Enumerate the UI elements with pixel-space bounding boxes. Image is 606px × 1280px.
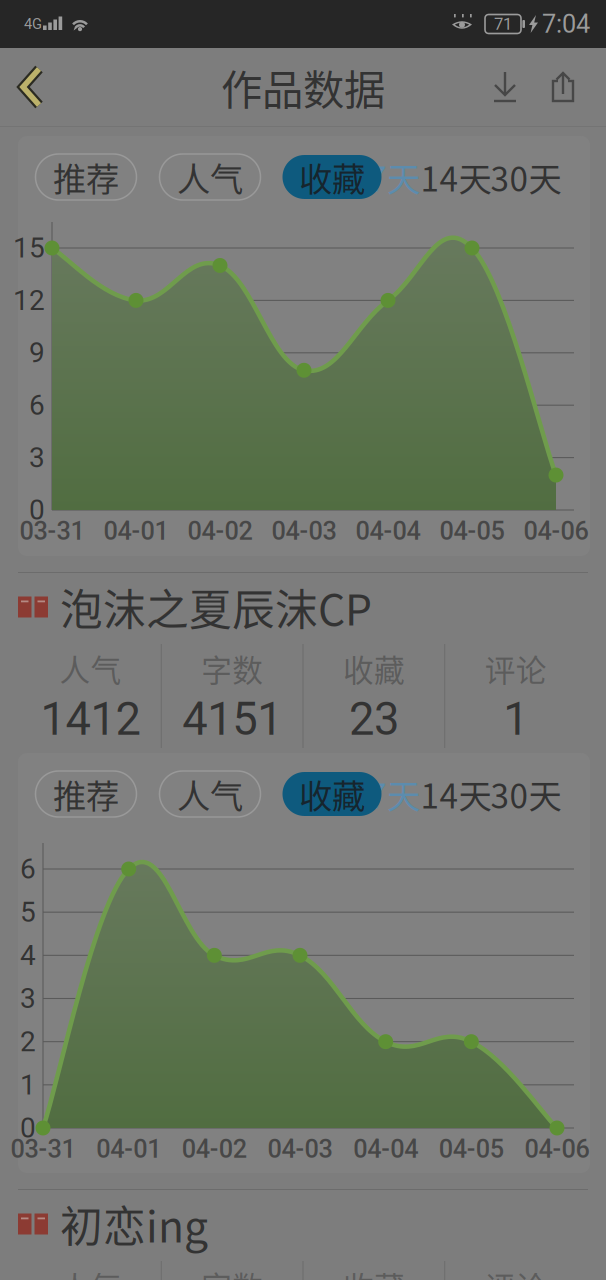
staticText: 9	[29, 336, 45, 369]
staticText: 3	[20, 982, 36, 1015]
staticText: 6	[20, 853, 36, 885]
staticText: 收藏	[343, 646, 405, 691]
staticText: 人气	[177, 153, 243, 201]
button[interactable]: 人气	[159, 771, 260, 817]
staticText: 03-31	[10, 1134, 75, 1164]
staticText: 04-03	[271, 516, 336, 546]
staticText: 评论	[485, 1263, 547, 1280]
button[interactable]: Download	[476, 48, 534, 126]
staticText: 5	[20, 896, 36, 929]
staticText: 2	[20, 1025, 36, 1058]
staticText: 04-02	[182, 1134, 247, 1164]
staticText: 1	[20, 1068, 36, 1101]
staticText: 0	[29, 494, 45, 526]
staticText: 泡沫之夏辰沫CP	[60, 576, 372, 638]
staticText: 04-06	[524, 1134, 589, 1164]
button[interactable]: 14天	[420, 770, 491, 818]
button[interactable]: 人气	[159, 154, 260, 200]
staticText: 30天	[490, 153, 561, 201]
button[interactable]: 收藏	[282, 155, 381, 199]
staticText: 评论	[485, 646, 547, 691]
staticText: 6	[29, 389, 45, 422]
staticText: 7:04	[542, 9, 590, 39]
staticText: 4151	[182, 693, 282, 746]
staticText: 1	[503, 693, 528, 746]
staticText: 7天	[368, 770, 420, 818]
button[interactable]: 推荐	[35, 771, 136, 817]
staticText: 14天	[420, 770, 491, 818]
staticText: 人气	[177, 770, 243, 818]
staticText: 04-05	[439, 516, 504, 546]
staticText: 7天	[368, 153, 420, 201]
staticText: 04-03	[267, 1134, 332, 1164]
button[interactable]: 收藏	[282, 772, 381, 816]
staticText: 04-05	[439, 1134, 504, 1164]
staticText: 3	[29, 441, 45, 474]
staticText: 字数	[201, 646, 263, 691]
staticText: 收藏	[299, 153, 365, 201]
staticText: 23	[349, 693, 399, 746]
staticText: 30天	[490, 770, 561, 818]
staticText: 字数	[201, 1263, 263, 1280]
staticText: 04-02	[187, 516, 252, 546]
button[interactable]: 推荐	[35, 154, 136, 200]
staticText: 14天	[420, 153, 491, 201]
staticText: 04-01	[96, 1134, 161, 1164]
staticText: 71	[494, 14, 512, 34]
button[interactable]: 14天	[420, 153, 491, 201]
staticText: 4G	[24, 15, 42, 33]
staticText: 04-06	[523, 516, 588, 546]
staticText: 0	[20, 1112, 36, 1144]
staticText: 04-04	[353, 1134, 418, 1164]
staticText: 04-01	[103, 516, 168, 546]
staticText: 人气	[59, 646, 121, 691]
staticText: 初恋ing	[60, 1193, 208, 1255]
staticText: 04-04	[355, 516, 420, 546]
staticText: 03-31	[19, 516, 84, 546]
button[interactable]: 7天	[368, 770, 420, 818]
staticText: 人气	[59, 1263, 121, 1280]
staticText: 推荐	[53, 770, 119, 818]
staticText: 15	[13, 232, 45, 264]
button[interactable]: 7天	[368, 153, 420, 201]
staticText: 作品数据	[221, 57, 385, 117]
staticText: 12	[13, 284, 45, 317]
staticText: 1412	[40, 693, 140, 746]
button[interactable]: Share	[534, 48, 592, 126]
staticText: 收藏	[343, 1263, 405, 1280]
staticText: 4	[20, 939, 36, 972]
button[interactable]: 30天	[490, 770, 561, 818]
button[interactable]: 30天	[490, 153, 561, 201]
button[interactable]: Back	[0, 48, 62, 126]
staticText: 推荐	[53, 153, 119, 201]
staticText: 收藏	[299, 770, 365, 818]
